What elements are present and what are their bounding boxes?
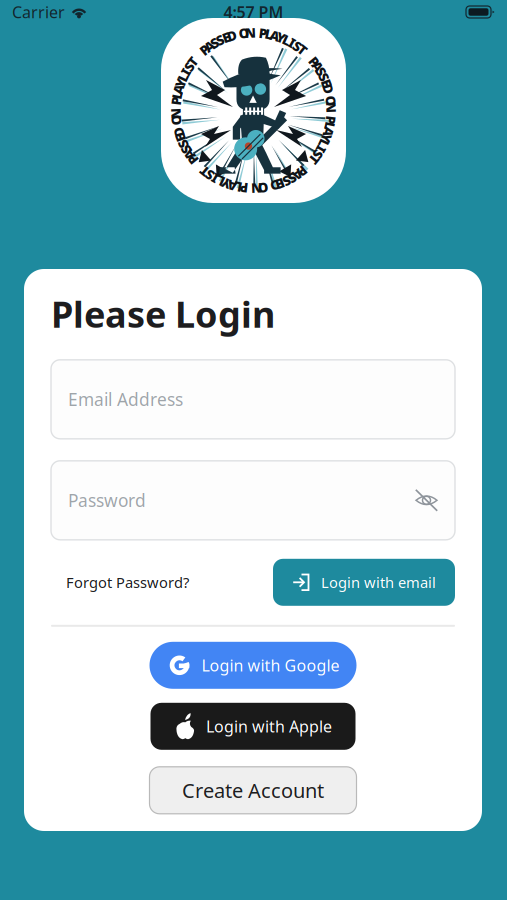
staticText: E (250, 24, 257, 41)
staticText: E (250, 24, 257, 41)
staticText: S (249, 24, 257, 41)
staticText (252, 24, 255, 41)
staticText: N (248, 24, 259, 41)
staticText: Password (68, 489, 146, 512)
staticText: L (249, 24, 257, 41)
staticText: Login with email (321, 573, 436, 592)
staticText: O (248, 24, 259, 41)
staticText: Y (249, 24, 258, 41)
staticText: T (249, 24, 257, 41)
staticText: Login with Google (201, 655, 339, 676)
staticText: D (248, 24, 258, 41)
staticText: S (249, 24, 257, 41)
staticText: Y (249, 24, 258, 41)
staticText: E (250, 24, 257, 41)
staticText: I (250, 24, 256, 41)
staticText: Create Account (182, 777, 324, 804)
staticText: S (249, 24, 257, 41)
staticText (252, 24, 255, 41)
staticText: L (249, 24, 257, 41)
staticText: P (249, 24, 257, 41)
staticText: I (250, 24, 256, 41)
staticText: S (249, 24, 257, 41)
staticText: N (248, 24, 259, 41)
staticText: S (249, 24, 257, 41)
staticText: A (248, 24, 258, 41)
staticText: T (249, 24, 257, 41)
staticText: Forgot Password? (66, 573, 189, 592)
staticText (252, 24, 255, 41)
staticText: P (249, 24, 257, 41)
staticText: P (249, 24, 257, 41)
staticText: S (249, 24, 257, 41)
staticText: P (249, 24, 257, 41)
staticText: L (249, 24, 257, 41)
staticText: S (249, 24, 257, 41)
staticText: O (248, 24, 259, 41)
staticText: A (248, 24, 258, 41)
staticText: Y (249, 24, 258, 41)
staticText: I (250, 24, 256, 41)
staticText: A (248, 24, 258, 41)
staticText: A (248, 24, 258, 41)
staticText: D (248, 24, 258, 41)
staticText: 4:57 PM (223, 1, 283, 23)
staticText: A (248, 24, 258, 41)
staticText: N (248, 24, 259, 41)
staticText (252, 24, 255, 41)
staticText: S (249, 24, 257, 41)
staticText (252, 24, 255, 41)
staticText (252, 24, 255, 41)
staticText: E (250, 24, 257, 41)
staticText: T (249, 24, 257, 41)
staticText: L (249, 24, 257, 41)
staticText: T (249, 24, 257, 41)
staticText: L (249, 24, 257, 41)
staticText: S (249, 24, 257, 41)
staticText: O (248, 24, 259, 41)
staticText: Y (249, 24, 258, 41)
staticText: A (248, 24, 258, 41)
staticText: A (248, 24, 258, 41)
staticText: P (249, 24, 257, 41)
staticText: S (249, 24, 257, 41)
button[interactable]: Login with email (273, 559, 455, 606)
staticText: D (248, 24, 258, 41)
staticText: P (249, 24, 257, 41)
staticText: Carrier (12, 1, 65, 23)
staticText: Login with Apple (206, 716, 332, 737)
button[interactable]: Show password (407, 484, 438, 517)
staticText: O (248, 24, 259, 41)
staticText (252, 24, 255, 41)
staticText: Email Address (68, 388, 183, 411)
staticText: L (249, 24, 257, 41)
button[interactable]: Create Account (149, 767, 356, 814)
staticText: L (249, 24, 257, 41)
button[interactable]: Login with Apple (150, 703, 355, 750)
staticText: I (250, 24, 256, 41)
staticText (252, 24, 255, 41)
staticText: Please Login (51, 290, 275, 338)
staticText: P (249, 24, 257, 41)
staticText: S (249, 24, 257, 41)
staticText: L (249, 24, 257, 41)
staticText: A (248, 24, 258, 41)
staticText: N (248, 24, 259, 41)
button[interactable]: Forgot Password? (51, 565, 189, 600)
button[interactable]: Email Address (51, 360, 455, 439)
staticText: D (248, 24, 258, 41)
staticText: P (249, 24, 257, 41)
staticText: S (249, 24, 257, 41)
button[interactable]: Login with Google (149, 642, 356, 689)
